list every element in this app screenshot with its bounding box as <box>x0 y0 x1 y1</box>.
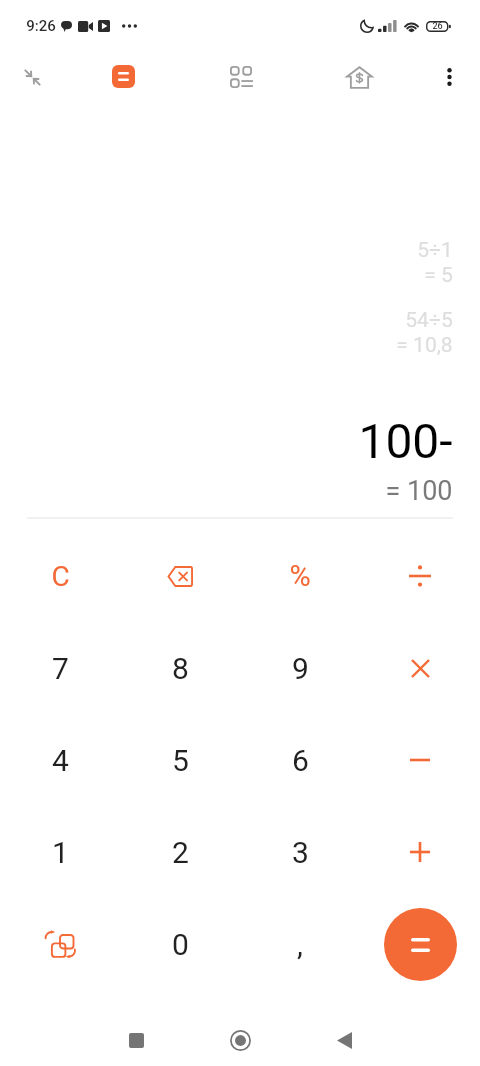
button[interactable]: , <box>240 898 360 990</box>
staticText: 0 <box>172 927 189 962</box>
button[interactable]: Divide <box>360 530 480 622</box>
staticText: = 10,8 <box>396 333 453 358</box>
button[interactable]: Equals <box>384 908 457 981</box>
button[interactable]: 5 <box>120 714 240 806</box>
button[interactable]: Collapse <box>10 55 54 99</box>
button[interactable]: Convert <box>0 898 120 990</box>
staticText: 26 <box>432 21 443 32</box>
staticText: = 5 <box>424 263 453 288</box>
button[interactable]: 9 <box>240 622 360 714</box>
button[interactable]: Mortgage calculator <box>337 55 381 99</box>
button[interactable]: Unit converter <box>219 55 263 99</box>
staticText: = 100 <box>385 475 453 507</box>
staticText: 2 <box>172 835 189 870</box>
button[interactable]: 7 <box>0 622 120 714</box>
staticText: 1 <box>52 835 69 870</box>
button[interactable]: 8 <box>120 622 240 714</box>
button[interactable]: 2 <box>120 806 240 898</box>
button[interactable]: C <box>0 530 120 622</box>
button[interactable]: 0 <box>120 898 240 990</box>
staticText: , <box>297 927 303 962</box>
button[interactable]: Minus <box>360 714 480 806</box>
button[interactable]: 3 <box>240 806 360 898</box>
staticText: 5 <box>172 743 189 778</box>
staticText: 3 <box>292 835 309 870</box>
staticText: % <box>289 559 311 593</box>
button[interactable]: Calculator <box>112 65 135 88</box>
button[interactable]: Recent apps <box>84 1014 188 1066</box>
button[interactable]: Backspace <box>120 530 240 622</box>
button[interactable]: 1 <box>0 806 120 898</box>
button[interactable]: % <box>240 530 360 622</box>
button[interactable]: Back <box>292 1014 396 1066</box>
staticText: 7 <box>52 651 69 686</box>
staticText: 9 <box>292 651 309 686</box>
button[interactable]: Home <box>188 1014 292 1066</box>
button[interactable]: Multiply <box>360 622 480 714</box>
staticText: 9:26 <box>26 17 56 35</box>
button[interactable]: More options <box>427 55 471 99</box>
staticText: 54÷5 <box>405 308 453 333</box>
button[interactable]: Plus <box>360 806 480 898</box>
staticText: 8 <box>172 651 189 686</box>
staticText: C <box>51 560 70 593</box>
staticText: 100- <box>358 413 453 469</box>
staticText: 6 <box>292 743 309 778</box>
staticText: 5÷1 <box>417 238 453 263</box>
staticText: 4 <box>52 743 69 778</box>
button[interactable]: 6 <box>240 714 360 806</box>
button[interactable]: 4 <box>0 714 120 806</box>
